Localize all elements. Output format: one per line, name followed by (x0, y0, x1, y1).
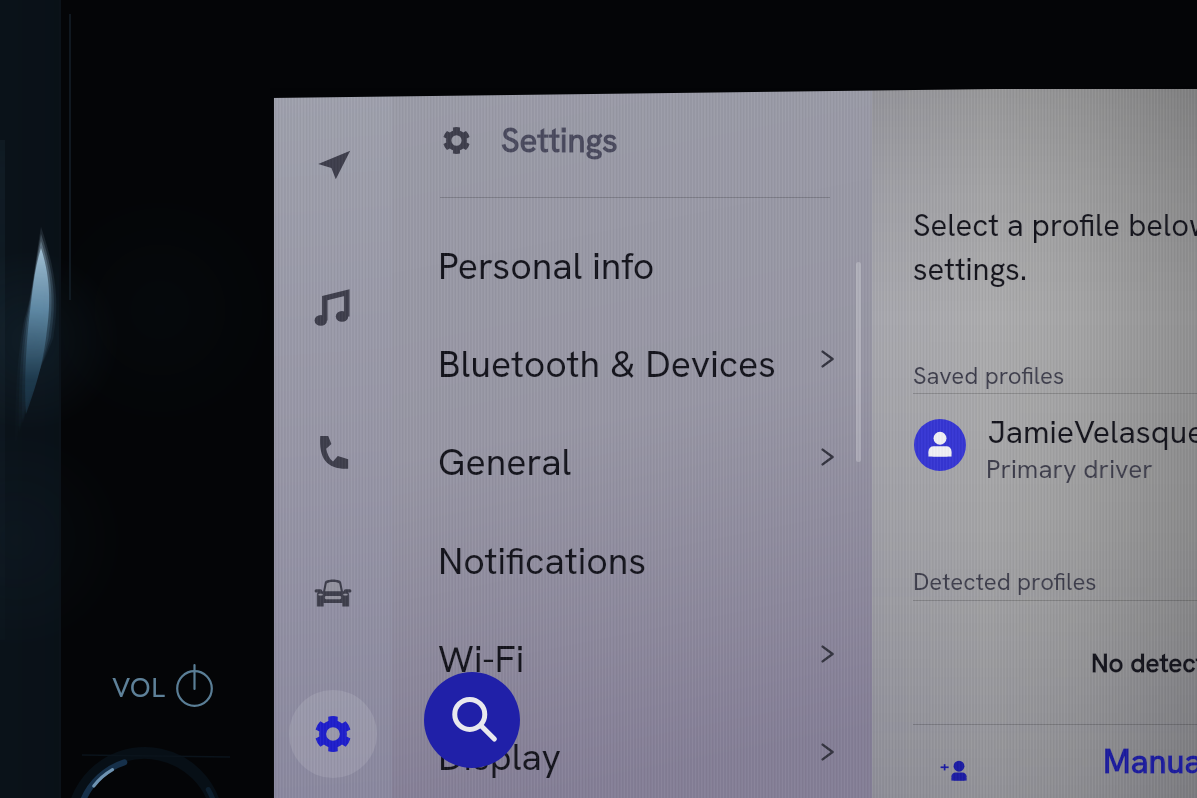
staticText: Detected profiles (913, 566, 1097, 597)
staticText: Personal info (438, 241, 655, 290)
button[interactable]: Wi-Fi (392, 609, 872, 707)
button[interactable]: Car (305, 564, 361, 620)
button[interactable]: Search (424, 672, 520, 768)
staticText: Notifications (438, 536, 647, 585)
staticText: Primary driver (986, 452, 1153, 486)
staticText: Wi-Fi (438, 634, 525, 683)
button[interactable]: Notifications (392, 511, 872, 609)
staticText: No detected profiles (1091, 646, 1197, 680)
button[interactable]: JamieVelasquez (872, 409, 1197, 487)
staticText: Manual (1103, 740, 1197, 783)
button[interactable]: Settings (428, 103, 668, 179)
staticText: Settings (501, 119, 618, 162)
staticText: settings. (913, 249, 1028, 289)
button[interactable]: Navigation (305, 136, 361, 192)
button[interactable]: General (392, 412, 872, 510)
button[interactable]: Media (305, 281, 361, 337)
staticText: Saved profiles (913, 360, 1065, 391)
button[interactable]: Bluetooth & Devices (392, 314, 872, 412)
button[interactable]: Add profile (927, 744, 981, 798)
staticText: General (438, 437, 572, 486)
button[interactable]: Settings (289, 690, 377, 778)
staticText: JamieVelasquez (988, 411, 1197, 453)
staticText: Display (438, 732, 561, 781)
button[interactable]: Phone (305, 424, 361, 480)
staticText: Select a profile below to adjust (913, 205, 1197, 245)
button[interactable]: Personal info (392, 216, 872, 314)
button[interactable]: Display (392, 707, 872, 798)
staticText: Bluetooth & Devices (438, 339, 776, 388)
button[interactable]: Manual (1085, 731, 1197, 787)
staticText: VOL (112, 669, 166, 705)
